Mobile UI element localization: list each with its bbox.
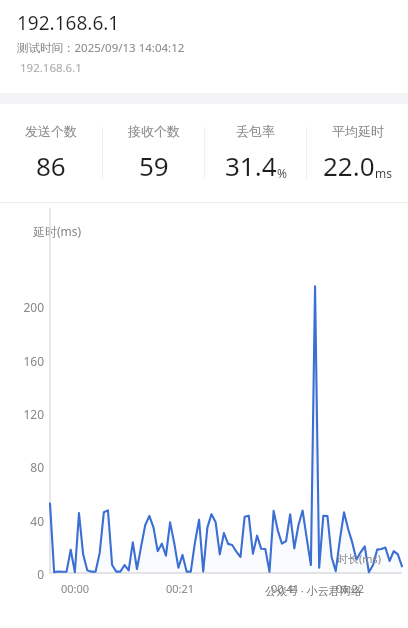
button[interactable]: 接收个数 <box>103 104 204 202</box>
button[interactable]: 发送个数 <box>0 104 102 202</box>
staticText: 00:21 <box>160 581 200 596</box>
staticText: 测试时间：2025/09/13 14:04:12 <box>17 40 185 56</box>
staticText: 160 <box>0 353 44 369</box>
staticText: 80 <box>0 459 44 475</box>
staticText: 00:00 <box>55 581 95 596</box>
staticText: 0 <box>0 566 44 582</box>
staticText: 丢包率 <box>236 123 275 139</box>
staticText: 192.168.6.1 <box>17 60 82 76</box>
staticText: 86 <box>36 148 66 183</box>
button[interactable]: 丢包率 <box>205 104 306 202</box>
staticText: 延时(ms) <box>33 223 82 239</box>
staticText: 公众号 · 小云君网络 <box>265 583 362 598</box>
staticText: 时长(ms) <box>337 551 382 566</box>
button[interactable]: 延时折线图 <box>0 203 408 628</box>
staticText: 22.0 <box>323 148 375 183</box>
staticText: 00:41 <box>265 581 305 596</box>
staticText: 59 <box>139 148 169 183</box>
staticText: ms <box>375 165 392 181</box>
staticText: 192.168.6.1 <box>17 10 120 36</box>
staticText: 120 <box>0 406 44 422</box>
button[interactable]: 平均延时 <box>307 104 408 202</box>
staticText: 40 <box>0 513 44 529</box>
staticText: % <box>277 165 287 181</box>
staticText: 31.4 <box>225 148 277 183</box>
staticText: 01:22 <box>330 581 370 596</box>
staticText: 发送个数 <box>25 123 77 139</box>
staticText: 平均延时 <box>332 123 384 139</box>
staticText: 200 <box>0 299 44 315</box>
staticText: 接收个数 <box>128 123 180 139</box>
